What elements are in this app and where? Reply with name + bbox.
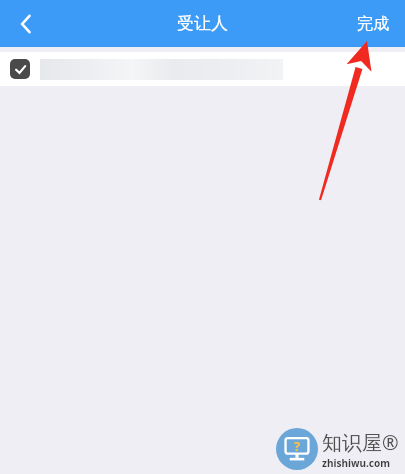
button[interactable]: 完成	[341, 0, 405, 47]
other: Selected	[10, 59, 30, 79]
button[interactable]: Selected	[0, 52, 405, 86]
staticText: 知识屋®	[322, 429, 399, 456]
staticText: 受让人	[177, 13, 228, 34]
button[interactable]: Back	[0, 0, 52, 47]
staticText: 完成	[357, 14, 389, 34]
staticText: zhishiwu.com	[322, 456, 390, 470]
staticText: ?	[294, 437, 301, 455]
